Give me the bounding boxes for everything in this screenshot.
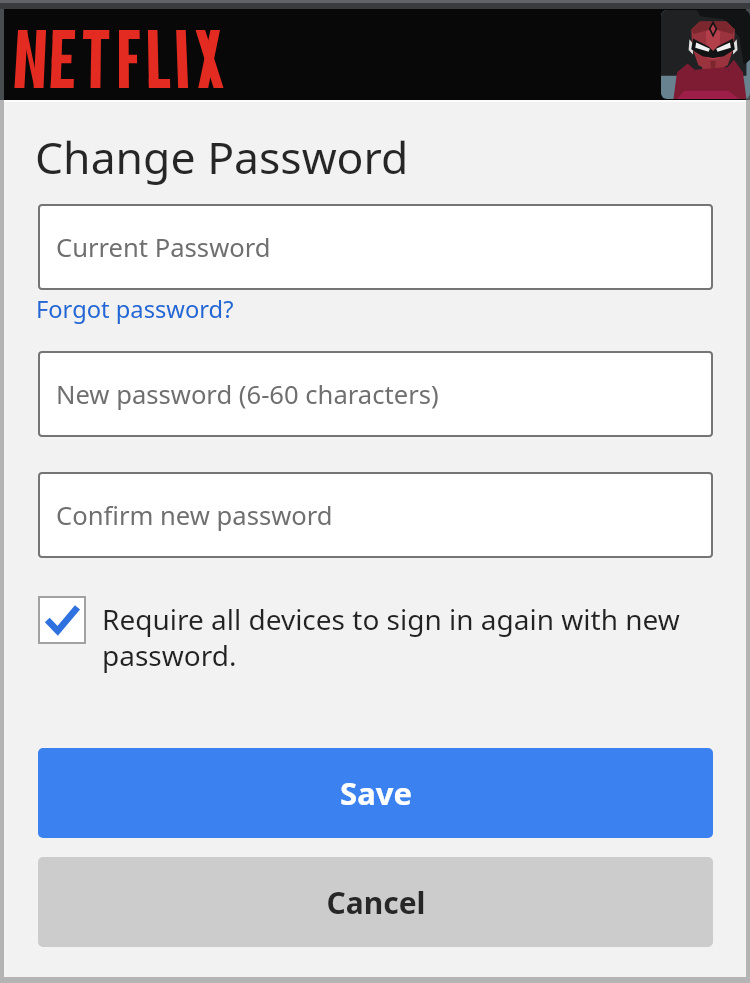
button[interactable]: Current Password xyxy=(38,204,713,290)
button[interactable]: Forgot password? xyxy=(36,293,234,325)
staticText: New password (6-60 characters) xyxy=(56,377,439,412)
button[interactable]: Cancel xyxy=(38,857,713,947)
button[interactable]: Profile xyxy=(661,10,750,99)
button[interactable]: Save xyxy=(38,748,713,838)
staticText: Cancel xyxy=(326,882,426,923)
button[interactable]: Require all devices to sign in again wit… xyxy=(38,595,714,669)
staticText: Confirm new password xyxy=(56,498,333,533)
button[interactable]: Confirm new password xyxy=(38,472,713,558)
staticText: Require all devices to sign in again wit… xyxy=(102,600,714,674)
staticText: Change Password xyxy=(35,126,409,187)
staticText: Current Password xyxy=(56,230,271,265)
staticText: Save xyxy=(340,772,412,814)
staticText: Forgot password? xyxy=(36,293,234,325)
button[interactable]: New password (6-60 characters) xyxy=(38,351,713,437)
button[interactable]: Netflix home xyxy=(18,30,220,88)
